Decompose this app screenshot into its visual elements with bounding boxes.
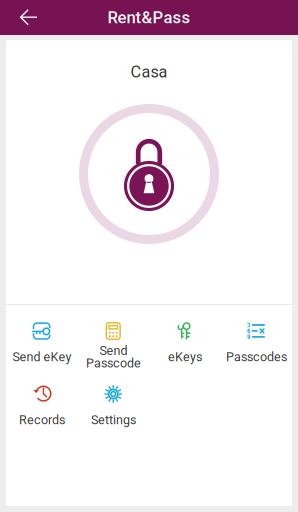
staticText: eKeys [168,350,202,364]
staticText: Records [19,413,65,427]
button[interactable]: eKeys [149,322,220,385]
button[interactable]: Records [6,385,77,448]
button[interactable]: Settings [77,385,149,448]
button[interactable]: Passcodes [220,322,292,385]
staticText: Rent&Pass [107,8,190,27]
staticText: Casa [130,62,167,82]
staticText: Send eKey [12,350,71,364]
staticText: Send Passcode [86,343,141,371]
staticText: Settings [91,413,136,427]
button[interactable]: Send eKey [6,322,77,385]
staticText: Passcodes [226,350,287,364]
button[interactable]: Back [0,0,47,35]
button[interactable]: Send Passcode [77,322,149,385]
